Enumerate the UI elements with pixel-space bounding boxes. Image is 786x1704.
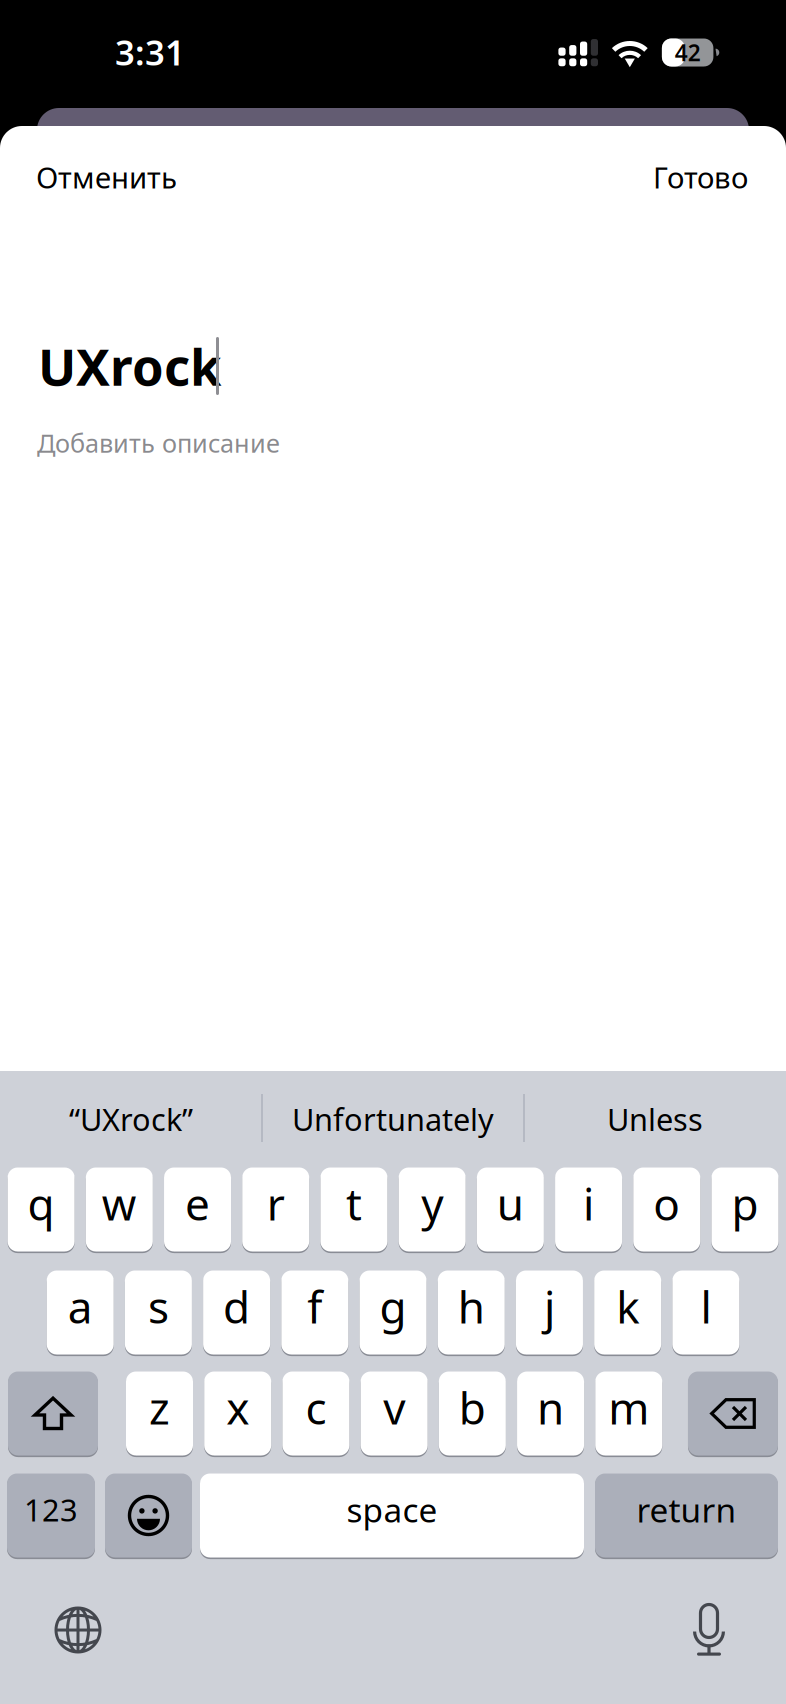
button[interactable]: Unless (524, 1071, 786, 1167)
button[interactable]: Dictation (674, 1586, 744, 1656)
button[interactable]: i (555, 1167, 622, 1253)
button[interactable]: space (200, 1473, 584, 1559)
button[interactable]: w (86, 1167, 153, 1253)
staticText: o (653, 1174, 680, 1233)
button[interactable]: Next keyboard (43, 1595, 113, 1665)
staticText: Отменить (36, 157, 177, 196)
staticText: m (608, 1378, 649, 1437)
button[interactable]: v (361, 1371, 428, 1457)
button[interactable]: r (242, 1167, 309, 1253)
button[interactable]: l (672, 1270, 739, 1356)
staticText: n (537, 1378, 564, 1437)
button[interactable]: Готово (528, 150, 748, 204)
staticText: c (305, 1378, 326, 1437)
staticText: Unless (607, 1099, 703, 1139)
staticText: h (458, 1277, 485, 1336)
button[interactable]: z (126, 1371, 193, 1457)
staticText: a (68, 1277, 93, 1336)
button[interactable]: j (516, 1270, 583, 1356)
staticText: f (307, 1277, 322, 1336)
staticText: Готово (653, 157, 748, 196)
staticText: 123 (24, 1489, 78, 1530)
staticText: g (379, 1277, 406, 1336)
staticText: w (102, 1174, 137, 1233)
staticText: l (700, 1277, 711, 1336)
button[interactable]: Отменить (36, 150, 256, 204)
staticText: y (421, 1174, 443, 1233)
staticText: Добавить описание (37, 426, 280, 460)
staticText: “UXrock” (69, 1099, 193, 1139)
button[interactable]: e (164, 1167, 231, 1253)
button[interactable]: Delete (688, 1371, 778, 1457)
staticText: UXrock (38, 332, 221, 400)
button[interactable]: Shift (8, 1371, 98, 1457)
button[interactable]: g (359, 1270, 426, 1356)
button[interactable]: u (477, 1167, 544, 1253)
button[interactable]: Unfortunately (262, 1071, 524, 1167)
staticText: b (459, 1378, 486, 1437)
staticText: p (731, 1174, 758, 1233)
button[interactable]: a (47, 1270, 114, 1356)
button[interactable]: f (281, 1270, 348, 1356)
button[interactable]: k (594, 1270, 661, 1356)
button[interactable]: n (517, 1371, 584, 1457)
staticText: q (28, 1174, 55, 1233)
staticText: space (346, 1487, 437, 1532)
staticText: j (544, 1277, 555, 1336)
staticText: x (226, 1378, 249, 1437)
button[interactable]: p (711, 1167, 778, 1253)
button[interactable]: d (203, 1270, 270, 1356)
button[interactable]: s (125, 1270, 192, 1356)
staticText: v (383, 1378, 405, 1437)
staticText: 3:31 (115, 29, 185, 75)
staticText: i (583, 1174, 594, 1233)
button[interactable]: y (399, 1167, 466, 1253)
staticText: s (148, 1277, 169, 1336)
button[interactable]: q (8, 1167, 75, 1253)
staticText: 42 (675, 37, 701, 67)
button[interactable]: m (595, 1371, 662, 1457)
button[interactable]: c (282, 1371, 349, 1457)
button[interactable]: h (438, 1270, 505, 1356)
staticText: d (223, 1277, 250, 1336)
button[interactable]: b (439, 1371, 506, 1457)
button[interactable]: “UXrock” (0, 1071, 262, 1167)
staticText: t (346, 1174, 362, 1233)
button[interactable]: return (595, 1473, 778, 1559)
staticText: r (267, 1174, 285, 1233)
button[interactable]: Emoji (105, 1473, 192, 1559)
staticText: k (616, 1277, 639, 1336)
staticText: return (636, 1487, 736, 1532)
button[interactable]: x (204, 1371, 271, 1457)
staticText: e (185, 1174, 210, 1233)
staticText: Unfortunately (292, 1099, 494, 1139)
staticText: z (149, 1378, 170, 1437)
button[interactable]: t (320, 1167, 387, 1253)
staticText: u (497, 1174, 524, 1233)
button[interactable]: o (633, 1167, 700, 1253)
button[interactable]: 123 (7, 1473, 95, 1559)
